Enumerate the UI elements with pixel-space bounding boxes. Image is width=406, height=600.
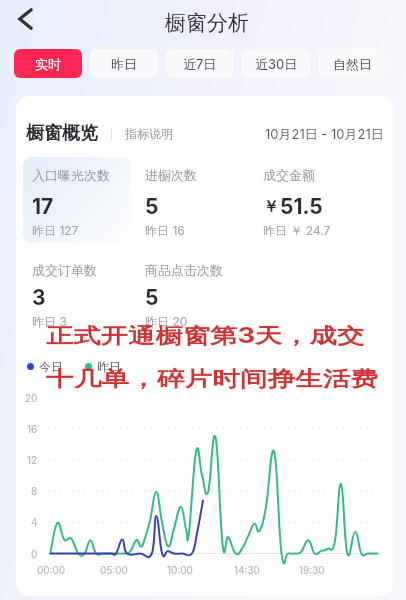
button[interactable]: 实时 bbox=[14, 49, 82, 78]
staticText: 今日 bbox=[39, 359, 63, 374]
staticText: 昨日 3 bbox=[32, 314, 67, 329]
staticText: 进橱次数 bbox=[145, 167, 197, 183]
staticText: 10月21日 - 10月21日 bbox=[265, 126, 384, 142]
staticText: 14:30 bbox=[234, 564, 260, 576]
staticText: 正式开通橱窗第3天，成交 bbox=[46, 323, 365, 350]
staticText: 昨日 127 bbox=[32, 223, 79, 238]
staticText: 16 bbox=[27, 423, 38, 435]
staticText: 51.5 bbox=[280, 194, 323, 219]
staticText: 8 bbox=[31, 485, 38, 497]
staticText: 成交订单数 bbox=[32, 262, 97, 278]
staticText: 昨日 ￥ 24.7 bbox=[263, 223, 331, 238]
staticText: 17 bbox=[32, 194, 54, 219]
staticText: 十几单，碎片时间挣生活费 bbox=[46, 366, 378, 393]
staticText: 昨日 bbox=[97, 359, 121, 374]
staticText: 05:00 bbox=[100, 564, 128, 576]
staticText: 5 bbox=[145, 194, 159, 219]
button[interactable]: 自然日 bbox=[318, 49, 386, 78]
staticText: 4 bbox=[31, 516, 38, 528]
staticText: 近7日 bbox=[183, 56, 217, 72]
button[interactable]: 昨日 bbox=[90, 49, 158, 78]
staticText: 入口曝光次数 bbox=[32, 167, 110, 183]
staticText: 5 bbox=[145, 285, 159, 310]
staticText: 自然日 bbox=[333, 56, 372, 72]
staticText: 橱窗分析 bbox=[165, 10, 249, 36]
staticText: 10:00 bbox=[167, 564, 193, 576]
staticText: 00:00 bbox=[37, 564, 66, 576]
staticText: 19:30 bbox=[299, 564, 325, 576]
staticText: 昨日 20 bbox=[145, 314, 188, 329]
staticText: 实时 bbox=[35, 56, 61, 72]
button[interactable]: 近30日 bbox=[242, 49, 310, 78]
button[interactable]: 指标说明 bbox=[125, 126, 173, 141]
staticText: 20 bbox=[25, 392, 38, 404]
button[interactable]: 近7日 bbox=[166, 49, 234, 78]
staticText: 近30日 bbox=[255, 56, 298, 72]
staticText: ￥ bbox=[263, 197, 279, 217]
staticText: 成交金额 bbox=[263, 167, 315, 183]
staticText: 12 bbox=[27, 454, 38, 466]
button[interactable] bbox=[23, 157, 131, 243]
staticText: 商品点击次数 bbox=[145, 262, 223, 278]
staticText: 0 bbox=[31, 548, 38, 560]
staticText: 橱窗概览 bbox=[26, 122, 98, 145]
staticText: 昨日 bbox=[111, 56, 137, 72]
staticText: 3 bbox=[32, 285, 46, 310]
staticText: 昨日 16 bbox=[145, 223, 185, 238]
button[interactable]: Back bbox=[6, 0, 44, 38]
